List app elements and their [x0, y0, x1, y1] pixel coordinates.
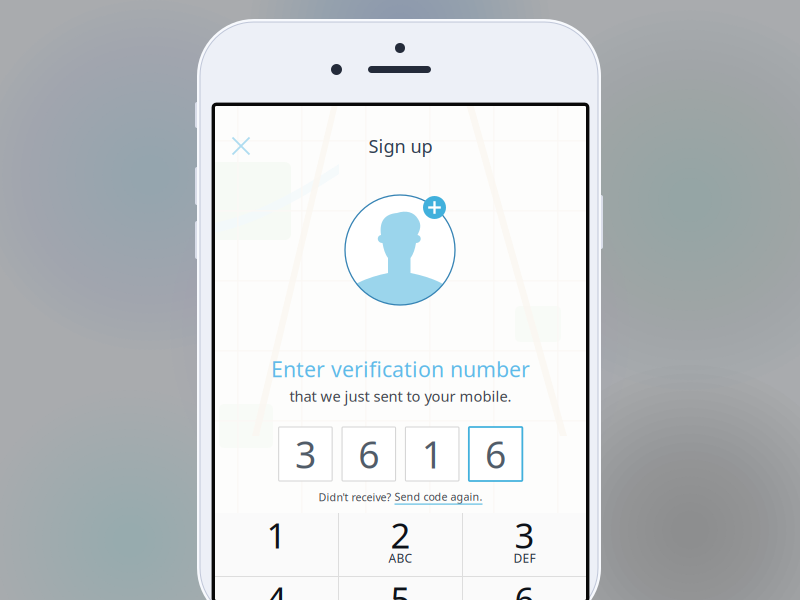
staticText: ABC: [388, 550, 412, 566]
staticText: Sign up: [368, 134, 432, 158]
staticText: 2: [390, 512, 410, 558]
staticText: DEF: [513, 550, 535, 566]
staticText: 6: [485, 429, 506, 479]
button[interactable]: 6: [342, 427, 395, 481]
button[interactable]: 6: [469, 427, 522, 481]
staticText: 6: [514, 576, 534, 600]
button[interactable]: 5: [339, 577, 462, 600]
button[interactable]: 3: [463, 513, 586, 576]
staticText: 6: [358, 429, 379, 479]
staticText: 4: [266, 576, 286, 600]
staticText: 1: [266, 512, 286, 558]
staticText: 3: [295, 429, 316, 479]
staticText: 1: [422, 429, 443, 479]
staticText: Didn't receive?: [318, 490, 394, 504]
staticText: 5: [390, 576, 410, 600]
button[interactable]: 3: [279, 427, 332, 481]
button[interactable]: 2: [339, 513, 462, 576]
button[interactable]: 1: [215, 513, 338, 576]
button[interactable]: 1: [405, 427, 459, 481]
staticText: 3: [514, 512, 534, 558]
button[interactable]: 6: [463, 577, 586, 600]
staticText: that we just sent to your mobile.: [289, 386, 511, 406]
button[interactable]: Close: [219, 124, 263, 168]
staticText: Enter verification number: [271, 355, 530, 383]
button[interactable]: 4: [215, 577, 338, 600]
button[interactable]: Send code again.: [394, 489, 482, 505]
staticText: Send code again.: [394, 489, 482, 504]
